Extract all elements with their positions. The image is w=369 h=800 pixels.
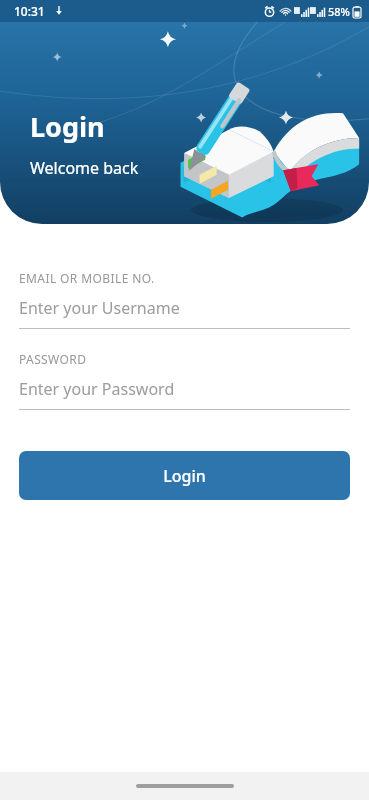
staticText: 58%: [328, 4, 350, 19]
staticText: EMAIL OR MOBILE NO.: [19, 270, 155, 286]
staticText: 10:31: [14, 3, 45, 19]
staticText: PASSWORD: [19, 351, 87, 367]
staticText: Enter your Username: [19, 297, 180, 319]
button[interactable]: Login: [19, 451, 350, 500]
staticText: Login: [163, 465, 206, 487]
staticText: Enter your Password: [19, 378, 175, 400]
other: Home gesture bar: [136, 784, 234, 788]
staticText: Login: [30, 108, 105, 145]
button[interactable]: PASSWORD: [19, 351, 350, 410]
button[interactable]: EMAIL OR MOBILE NO.: [19, 270, 350, 329]
staticText: Welcome back: [30, 157, 139, 179]
